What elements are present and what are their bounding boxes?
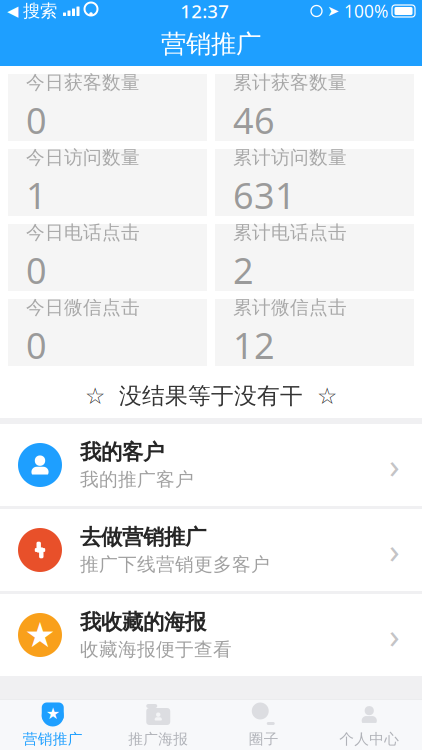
staticText: › (389, 442, 400, 488)
staticText: 个人中心 (339, 730, 399, 748)
button[interactable]: 圈子 (211, 700, 316, 750)
staticText: ★ (24, 615, 55, 655)
staticText: ◀ (7, 3, 18, 19)
button[interactable]: ★ (0, 594, 422, 676)
staticText: 收藏海报便于查看 (80, 638, 232, 661)
staticText: 营销推广 (23, 730, 83, 748)
button[interactable]: 去做营销推广 (0, 509, 422, 591)
button[interactable]: 个人中心 (316, 700, 422, 750)
staticText: 搜索 (18, 0, 57, 22)
staticText: 0 (26, 321, 47, 369)
staticText: 0 (26, 96, 47, 144)
staticText: 我收藏的海报 (80, 609, 206, 635)
staticText: ☆ (317, 383, 337, 409)
staticText: 推广海报 (128, 730, 188, 748)
staticText: 今日电话点击 (26, 221, 140, 244)
button[interactable]: 推广海报 (105, 700, 211, 750)
staticText: 46 (233, 96, 275, 144)
staticText: 12:37 (180, 0, 229, 23)
staticText: 我的推广客户 (80, 468, 194, 491)
staticText: › (389, 527, 400, 573)
staticText: 去做营销推广 (80, 524, 206, 550)
staticText: 圈子 (249, 730, 279, 748)
staticText: 100% (339, 0, 388, 22)
staticText: 没结果等于没有干 (105, 382, 317, 410)
staticText: 我的客户 (80, 439, 164, 465)
staticText: 推广下线营销更多客户 (80, 553, 270, 576)
staticText: ☆ (85, 383, 105, 409)
staticText: 今日微信点击 (26, 296, 140, 319)
staticText: ★ (46, 704, 60, 723)
staticText: ➤ (322, 3, 339, 19)
staticText: 营销推广 (161, 28, 261, 59)
button[interactable]: ★ (0, 700, 105, 750)
staticText: 今日访问数量 (26, 146, 140, 169)
staticText: 今日获客数量 (26, 71, 140, 94)
staticText: 累计电话点击 (233, 221, 347, 244)
staticText: 累计访问数量 (233, 146, 347, 169)
staticText: 累计获客数量 (233, 71, 347, 94)
staticText: › (389, 612, 400, 658)
staticText: 累计微信点击 (233, 296, 347, 319)
staticText: 631 (233, 171, 296, 219)
staticText: 0 (26, 246, 47, 294)
staticText: 1 (26, 171, 47, 219)
staticText: 2 (233, 246, 254, 294)
button[interactable]: 我的客户 (0, 424, 422, 506)
staticText: 12 (233, 321, 275, 369)
